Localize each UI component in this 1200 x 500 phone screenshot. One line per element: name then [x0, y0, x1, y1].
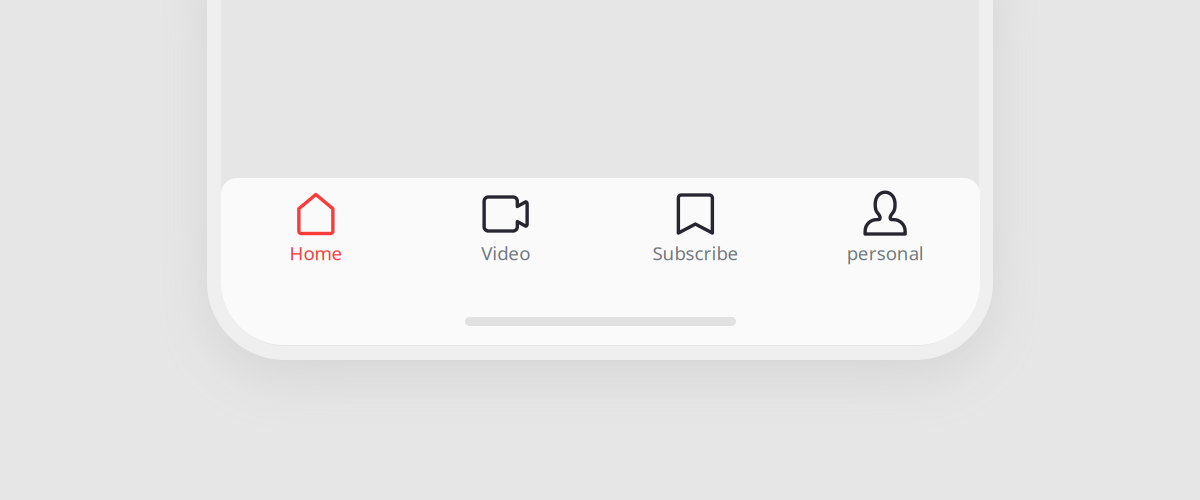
staticText: Home: [289, 241, 342, 265]
staticText: Video: [481, 241, 530, 265]
button[interactable]: Video: [411, 178, 601, 264]
button[interactable]: personal: [790, 178, 980, 264]
staticText: Subscribe: [652, 241, 738, 265]
staticText: personal: [847, 241, 924, 265]
button[interactable]: Subscribe: [600, 178, 790, 264]
button[interactable]: Home: [221, 178, 411, 264]
